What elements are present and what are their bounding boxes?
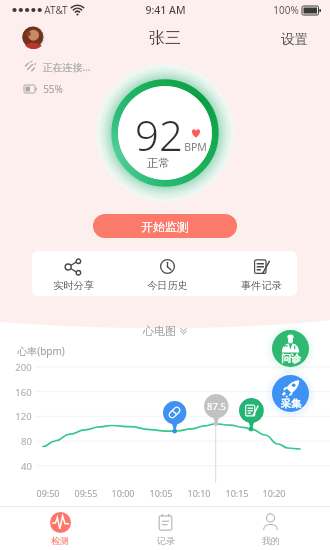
staticText: 87.5 (207, 400, 226, 413)
staticText: 9:41 AM (145, 3, 186, 17)
staticText: 10:15 (225, 487, 249, 499)
button[interactable]: 开始监测 (93, 214, 237, 238)
button[interactable]: 心电图 (143, 324, 187, 338)
button[interactable]: Profile (22, 26, 45, 49)
button[interactable]: 检测 (7, 507, 113, 550)
staticText: 张三 (149, 28, 181, 48)
button[interactable]: Event record (239, 398, 264, 430)
button[interactable]: Heart rate value (204, 394, 228, 425)
staticText: 我的 (262, 535, 280, 546)
staticText: 10:10 (187, 487, 211, 499)
staticText: 120 (15, 410, 32, 423)
staticText: 160 (15, 386, 32, 399)
staticText: 检测 (51, 535, 69, 546)
staticText: 事件记录 (241, 279, 282, 292)
button[interactable]: 今日历史 (139, 251, 195, 296)
button[interactable]: 记录 (113, 507, 218, 550)
button[interactable]: 实时分享 (45, 251, 101, 296)
staticText: 心率(bpm) (17, 344, 65, 358)
staticText: 实时分享 (53, 279, 94, 292)
staticText: 问诊 (281, 352, 301, 365)
staticText: 记录 (157, 535, 175, 546)
staticText: 10:00 (111, 487, 135, 499)
button[interactable]: 我的 (218, 507, 323, 550)
button[interactable]: 事件记录 (233, 251, 289, 296)
button[interactable]: 采集 (272, 375, 309, 412)
staticText: 正常 (147, 156, 170, 170)
staticText: 09:55 (74, 487, 98, 499)
staticText: 开始监测 (141, 219, 189, 234)
staticText: 设置 (281, 31, 308, 48)
button[interactable]: Medication record (163, 401, 186, 431)
staticText: 55% (43, 82, 63, 96)
button[interactable]: 设置 (281, 31, 308, 48)
staticText: 80 (21, 435, 32, 448)
staticText: 心电图 (143, 324, 176, 338)
staticText: 09:50 (36, 487, 60, 499)
button[interactable]: 问诊 (272, 330, 309, 367)
staticText: 92 (135, 106, 183, 163)
staticText: 正在连接... (42, 60, 91, 74)
staticText: 10:20 (262, 487, 286, 499)
staticText: 采集 (281, 397, 301, 410)
staticText: 今日历史 (147, 279, 188, 292)
staticText: 200 (15, 361, 32, 374)
staticText: 100% (273, 3, 299, 17)
staticText: 40 (21, 460, 32, 473)
staticText: BPM (184, 140, 207, 154)
staticText: 10:05 (149, 487, 173, 499)
staticText: AT&T (44, 3, 68, 17)
